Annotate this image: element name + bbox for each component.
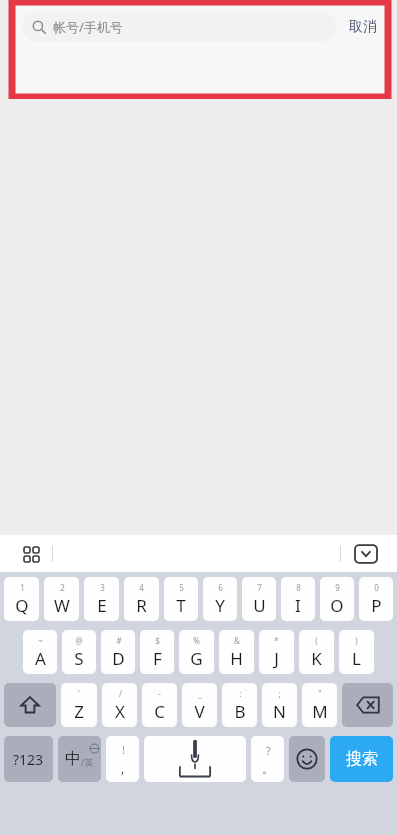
button[interactable]: 8 bbox=[281, 577, 315, 621]
staticText: W bbox=[54, 594, 70, 617]
staticText: 3 bbox=[100, 582, 105, 593]
button[interactable]: 取消 bbox=[347, 18, 379, 36]
staticText: / bbox=[119, 688, 122, 699]
staticText: U bbox=[253, 594, 266, 617]
staticText: F bbox=[153, 647, 162, 670]
staticText: E bbox=[97, 594, 107, 617]
button[interactable]: / bbox=[102, 683, 137, 727]
staticText: G bbox=[190, 647, 203, 670]
staticText: S bbox=[74, 647, 84, 670]
button[interactable]: ~ bbox=[23, 630, 57, 674]
staticText: 1 bbox=[20, 582, 25, 593]
button[interactable]: ? bbox=[251, 736, 284, 782]
staticText: $ bbox=[155, 635, 160, 646]
staticText: I bbox=[295, 594, 301, 617]
staticText: O bbox=[330, 594, 344, 617]
staticText: R bbox=[136, 594, 147, 617]
button[interactable]: 4 bbox=[124, 577, 159, 621]
staticText: 8 bbox=[296, 582, 301, 593]
button[interactable]: Backspace bbox=[342, 683, 393, 727]
staticText: C bbox=[154, 700, 165, 723]
staticText: 2 bbox=[60, 582, 65, 593]
staticText: V bbox=[194, 700, 205, 723]
staticText: 7 bbox=[257, 582, 262, 593]
button[interactable]: " bbox=[302, 683, 337, 727]
staticText: ( bbox=[315, 635, 318, 646]
staticText: @ bbox=[75, 635, 83, 646]
staticText: : bbox=[239, 688, 242, 699]
staticText: ! bbox=[122, 742, 125, 757]
button[interactable]: ' bbox=[61, 683, 97, 727]
button[interactable]: Hide keyboard bbox=[351, 539, 381, 569]
staticText: & bbox=[234, 635, 240, 646]
staticText: M bbox=[312, 700, 328, 723]
staticText: 取消 bbox=[349, 18, 377, 36]
button[interactable]: @ bbox=[62, 630, 96, 674]
staticText: ; bbox=[278, 688, 281, 699]
staticText: 0 bbox=[374, 582, 379, 593]
button[interactable]: ; bbox=[262, 683, 297, 727]
button[interactable]: 中 bbox=[58, 736, 101, 782]
staticText: % bbox=[193, 635, 200, 646]
button[interactable]: Space, voice input bbox=[144, 736, 246, 782]
button[interactable]: 3 bbox=[84, 577, 119, 621]
staticText: Q bbox=[15, 594, 29, 617]
staticText: # bbox=[116, 635, 122, 646]
button[interactable]: % bbox=[179, 630, 214, 674]
button[interactable]: 搜索 bbox=[330, 736, 393, 782]
staticText: ~ bbox=[38, 635, 43, 646]
staticText: 搜索 bbox=[346, 749, 378, 769]
button[interactable]: 1 bbox=[4, 577, 39, 621]
button[interactable]: Emoji bbox=[289, 736, 325, 782]
staticText: /英 bbox=[81, 756, 94, 768]
staticText: 。 bbox=[262, 761, 274, 776]
staticText: 帐号/手机号 bbox=[53, 18, 123, 36]
button[interactable]: Keyboard apps bbox=[18, 541, 44, 567]
button[interactable]: # bbox=[101, 630, 135, 674]
button[interactable]: 7 bbox=[242, 577, 276, 621]
button[interactable]: $ bbox=[140, 630, 174, 674]
staticText: , bbox=[121, 760, 125, 776]
staticText: 中 bbox=[65, 749, 81, 769]
button[interactable]: - bbox=[142, 683, 177, 727]
button[interactable]: & bbox=[219, 630, 254, 674]
staticText: ) bbox=[355, 635, 358, 646]
staticText: N bbox=[273, 700, 286, 723]
staticText: P bbox=[371, 594, 382, 617]
staticText: H bbox=[230, 647, 243, 670]
staticText: Y bbox=[215, 594, 225, 617]
button[interactable]: Shift bbox=[4, 683, 56, 727]
staticText: L bbox=[352, 647, 361, 670]
staticText: J bbox=[274, 647, 279, 670]
staticText: X bbox=[115, 700, 125, 723]
staticText: K bbox=[311, 647, 322, 670]
staticText: A bbox=[35, 647, 46, 670]
button[interactable]: 0 bbox=[359, 577, 393, 621]
staticText: Z bbox=[74, 700, 84, 723]
button[interactable]: 5 bbox=[164, 577, 198, 621]
button[interactable]: ) bbox=[339, 630, 374, 674]
button[interactable]: : bbox=[222, 683, 257, 727]
staticText: 6 bbox=[218, 582, 223, 593]
button[interactable]: ( bbox=[299, 630, 334, 674]
button[interactable]: 6 bbox=[203, 577, 237, 621]
staticText: B bbox=[234, 700, 246, 723]
button[interactable]: ! bbox=[106, 736, 139, 782]
button[interactable]: ?123 bbox=[4, 736, 53, 782]
staticText: 9 bbox=[335, 582, 340, 593]
staticText: 4 bbox=[139, 582, 144, 593]
staticText: ' bbox=[78, 688, 80, 699]
staticText: ? bbox=[266, 743, 271, 758]
staticText: _ bbox=[198, 688, 202, 699]
button[interactable]: * bbox=[259, 630, 294, 674]
button[interactable]: 9 bbox=[320, 577, 354, 621]
staticText: T bbox=[176, 594, 186, 617]
staticText: " bbox=[318, 688, 322, 699]
staticText: ?123 bbox=[13, 750, 44, 769]
staticText: * bbox=[274, 635, 279, 646]
button[interactable]: 2 bbox=[44, 577, 79, 621]
button[interactable]: 帐号/手机号 bbox=[22, 12, 337, 42]
button[interactable]: _ bbox=[182, 683, 217, 727]
staticText: 5 bbox=[179, 582, 184, 593]
staticText: - bbox=[158, 688, 161, 699]
